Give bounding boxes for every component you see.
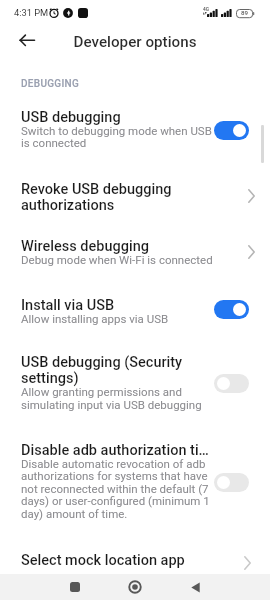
staticText: simulating input via USB debugging bbox=[21, 398, 202, 411]
button[interactable] bbox=[214, 300, 249, 319]
button[interactable] bbox=[214, 121, 249, 140]
button[interactable] bbox=[20, 33, 35, 48]
button[interactable] bbox=[214, 374, 249, 393]
button[interactable]: Disable adb authorization ti… bbox=[0, 432, 270, 528]
button[interactable] bbox=[124, 574, 145, 600]
staticText: is connected bbox=[21, 136, 87, 149]
staticText: USB debugging bbox=[21, 109, 121, 126]
staticText: not reconnected within the default (7 bbox=[21, 482, 209, 495]
staticText: Select mock location app bbox=[21, 552, 185, 569]
staticText: Wireless debugging bbox=[21, 238, 149, 255]
button[interactable] bbox=[64, 574, 85, 600]
staticText: DEBUGGING bbox=[21, 78, 80, 90]
staticText: Switch to debugging mode when USB bbox=[21, 124, 212, 137]
button[interactable]: Select mock location app bbox=[0, 540, 270, 573]
staticText: day) amount of time. bbox=[21, 507, 128, 520]
staticText: Developer options bbox=[0, 33, 270, 51]
staticText: USB debugging (Security bbox=[21, 354, 183, 371]
staticText: 4:31 PM bbox=[14, 7, 49, 18]
staticText: settings) bbox=[21, 370, 79, 387]
staticText: Install via USB bbox=[21, 297, 115, 314]
button[interactable] bbox=[214, 473, 249, 492]
staticText: Disable automatic revocation of adb bbox=[21, 457, 206, 470]
staticText: Revoke USB debugging bbox=[21, 181, 172, 198]
button[interactable]: Install via USB bbox=[0, 290, 270, 342]
staticText: Allow installing apps via USB bbox=[21, 312, 169, 325]
staticText: days) or user-configured (minimum 1 bbox=[21, 494, 210, 507]
button[interactable]: USB debugging (Security bbox=[0, 348, 270, 426]
staticText: 89 bbox=[241, 9, 249, 16]
staticText: Debug mode when Wi-Fi is connected bbox=[21, 253, 213, 266]
button[interactable]: Wireless debugging bbox=[0, 228, 270, 286]
staticText: authorizations for systems that have bbox=[21, 469, 208, 482]
staticText: 4G bbox=[203, 7, 209, 13]
staticText: authorizations bbox=[21, 197, 115, 214]
staticText: Allow granting permissions and bbox=[21, 385, 182, 398]
button[interactable]: USB debugging bbox=[0, 96, 270, 162]
staticText: Disable adb authorization ti… bbox=[21, 442, 209, 459]
button[interactable] bbox=[185, 574, 206, 600]
button[interactable]: Revoke USB debugging bbox=[0, 172, 270, 220]
